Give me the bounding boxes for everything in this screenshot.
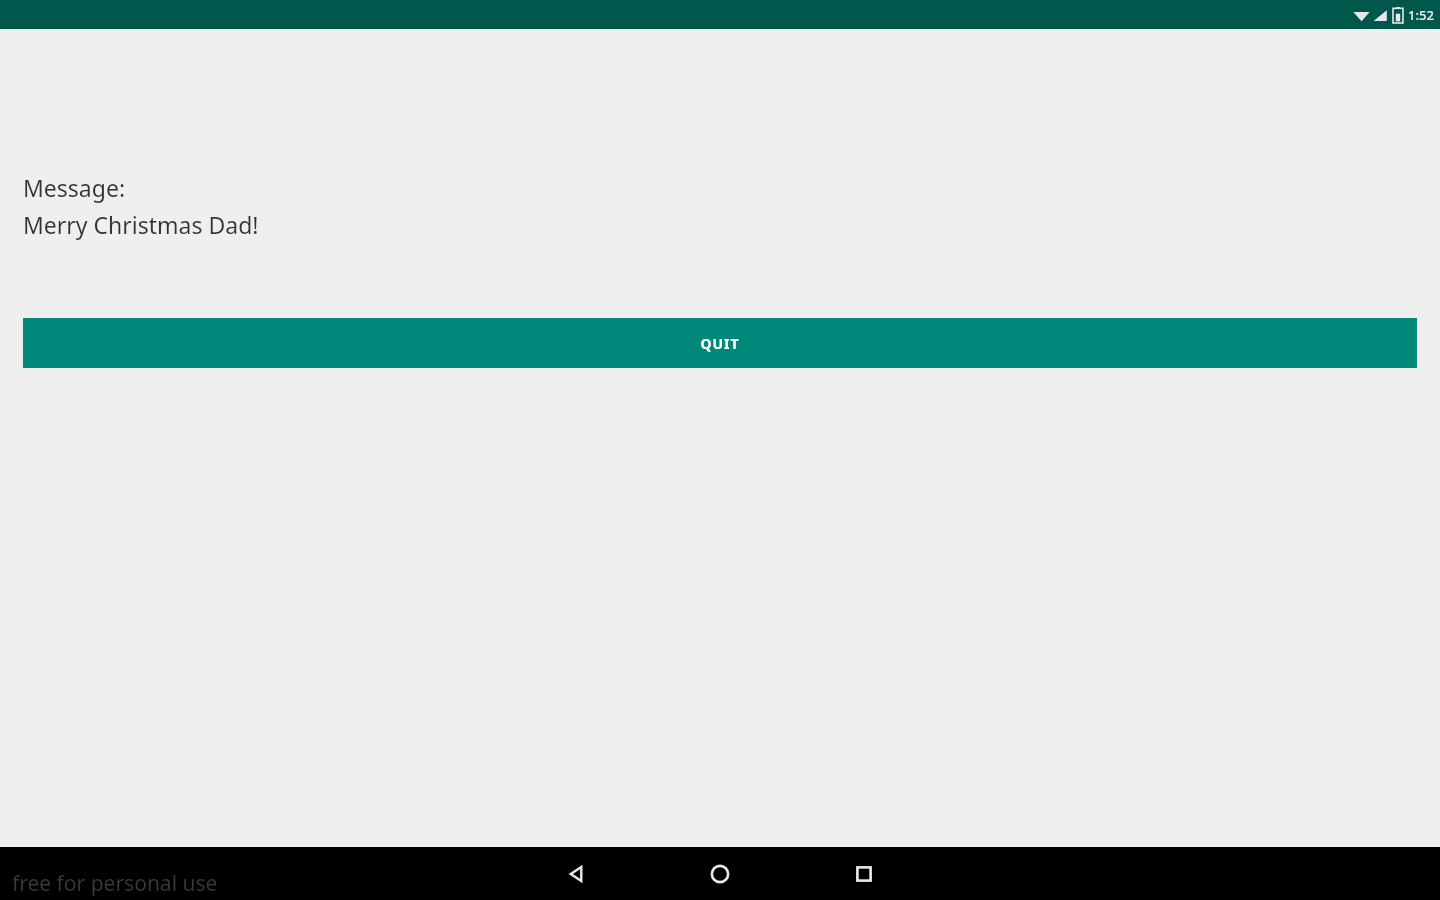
staticText: QUIT — [700, 334, 740, 353]
button[interactable]: Back — [504, 847, 648, 900]
button[interactable]: Home — [648, 847, 792, 900]
staticText: Merry Christmas Dad! — [23, 209, 259, 240]
staticText: free for personal use — [12, 869, 218, 898]
button[interactable]: Recent apps — [792, 847, 936, 900]
button[interactable]: QUIT — [23, 318, 1417, 368]
staticText: 1:52 — [1408, 6, 1434, 24]
staticText: Message: — [23, 172, 126, 203]
